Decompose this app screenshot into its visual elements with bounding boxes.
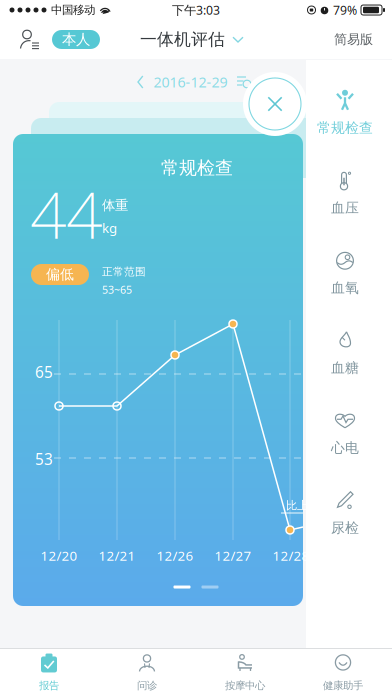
button[interactable]: 血氧 (306, 234, 392, 314)
staticText: 常规检查 (317, 119, 373, 137)
staticText: 12/26 (156, 546, 193, 565)
staticText: 下午3:03 (172, 2, 220, 18)
staticText: 65 (35, 362, 53, 382)
button[interactable]: 尿检 (306, 474, 392, 554)
button[interactable]: 问诊 (98, 649, 196, 696)
staticText: 问诊 (137, 679, 157, 692)
button[interactable]: 按摩中心 (196, 649, 294, 696)
button[interactable]: 常规检查 (306, 74, 392, 154)
staticText: 44 (30, 171, 102, 256)
button[interactable]: 血压 (306, 154, 392, 234)
button[interactable]: 健康助手 (294, 649, 392, 696)
staticText: 血氧 (331, 279, 359, 297)
button[interactable]: 关闭 (243, 72, 307, 136)
staticText: 比上 (286, 498, 308, 513)
button[interactable]: 报告 (0, 649, 98, 696)
button[interactable]: 简易版 (315, 20, 392, 59)
staticText: 本人 (62, 30, 90, 48)
staticText: 心电 (331, 439, 359, 457)
staticText: 53 (35, 449, 53, 469)
button[interactable]: 本人 (0, 20, 100, 59)
staticText: 报告 (39, 679, 59, 692)
staticText: 偏低 (46, 266, 74, 283)
staticText: 79% (333, 2, 357, 18)
staticText: 正常范围 (102, 265, 146, 278)
staticText: 血压 (331, 199, 359, 217)
staticText: 12/27 (214, 546, 251, 565)
staticText: 一体机评估 (140, 29, 225, 50)
staticText: 简易版 (334, 31, 373, 48)
staticText: 体重 (102, 197, 128, 214)
button[interactable]: 血糖 (306, 314, 392, 394)
staticText: 尿检 (331, 519, 359, 537)
button[interactable]: 心电 (306, 394, 392, 474)
staticText: 12/21 (98, 546, 135, 565)
staticText: 2016-12-29 (153, 72, 227, 92)
staticText: 12/28 (272, 546, 309, 565)
staticText: 常规检查 (161, 157, 233, 179)
button[interactable]: 2016-12-29 (131, 70, 257, 94)
staticText: 按摩中心 (225, 679, 265, 692)
staticText: 中国移动 (51, 3, 95, 17)
staticText: 健康助手 (323, 679, 363, 692)
button[interactable]: 一体机评估 (140, 20, 244, 59)
staticText: 血糖 (331, 359, 359, 377)
staticText: 12/20 (40, 546, 77, 565)
staticText: kg (102, 219, 117, 237)
staticText: 53~65 (102, 282, 132, 297)
